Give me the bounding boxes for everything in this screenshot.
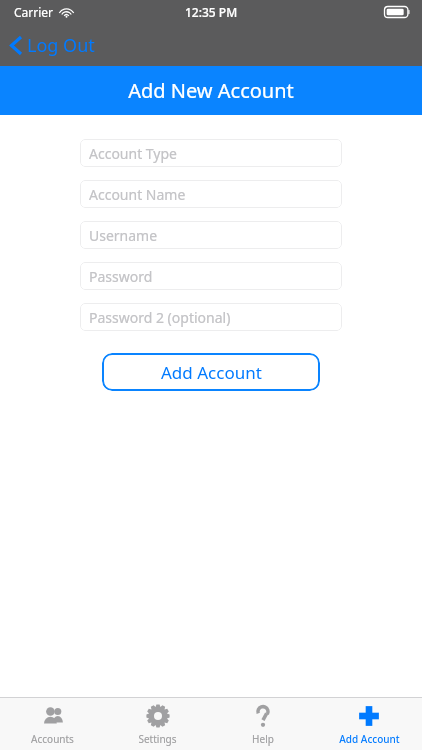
staticText: Password 2 (optional) bbox=[89, 308, 231, 327]
button[interactable]: Help bbox=[210, 698, 316, 750]
button[interactable]: Add Account bbox=[102, 353, 320, 391]
button[interactable]: Accounts bbox=[0, 698, 105, 750]
staticText: Help bbox=[252, 732, 274, 746]
button[interactable]: Add Account bbox=[316, 698, 422, 750]
staticText: Log Out bbox=[27, 33, 95, 58]
button[interactable]: Account Type bbox=[80, 139, 342, 167]
staticText: Add New Account bbox=[128, 77, 294, 104]
button[interactable]: Account Name bbox=[80, 180, 342, 208]
button[interactable]: Password 2 (optional) bbox=[80, 303, 342, 331]
staticText: Account Name bbox=[89, 185, 186, 204]
button[interactable]: Log Out bbox=[0, 29, 107, 62]
staticText: Carrier bbox=[14, 4, 54, 20]
staticText: Settings bbox=[138, 732, 177, 746]
button[interactable]: Settings bbox=[105, 698, 210, 750]
button[interactable]: Username bbox=[80, 221, 342, 249]
staticText: Password bbox=[89, 267, 153, 286]
staticText: Accounts bbox=[31, 732, 74, 746]
staticText: Add Account bbox=[339, 732, 400, 746]
staticText: Account Type bbox=[89, 144, 178, 163]
staticText: Username bbox=[89, 226, 158, 245]
staticText: Add Account bbox=[161, 361, 262, 384]
button[interactable]: Password bbox=[80, 262, 342, 290]
staticText: 12:35 PM bbox=[185, 4, 238, 20]
